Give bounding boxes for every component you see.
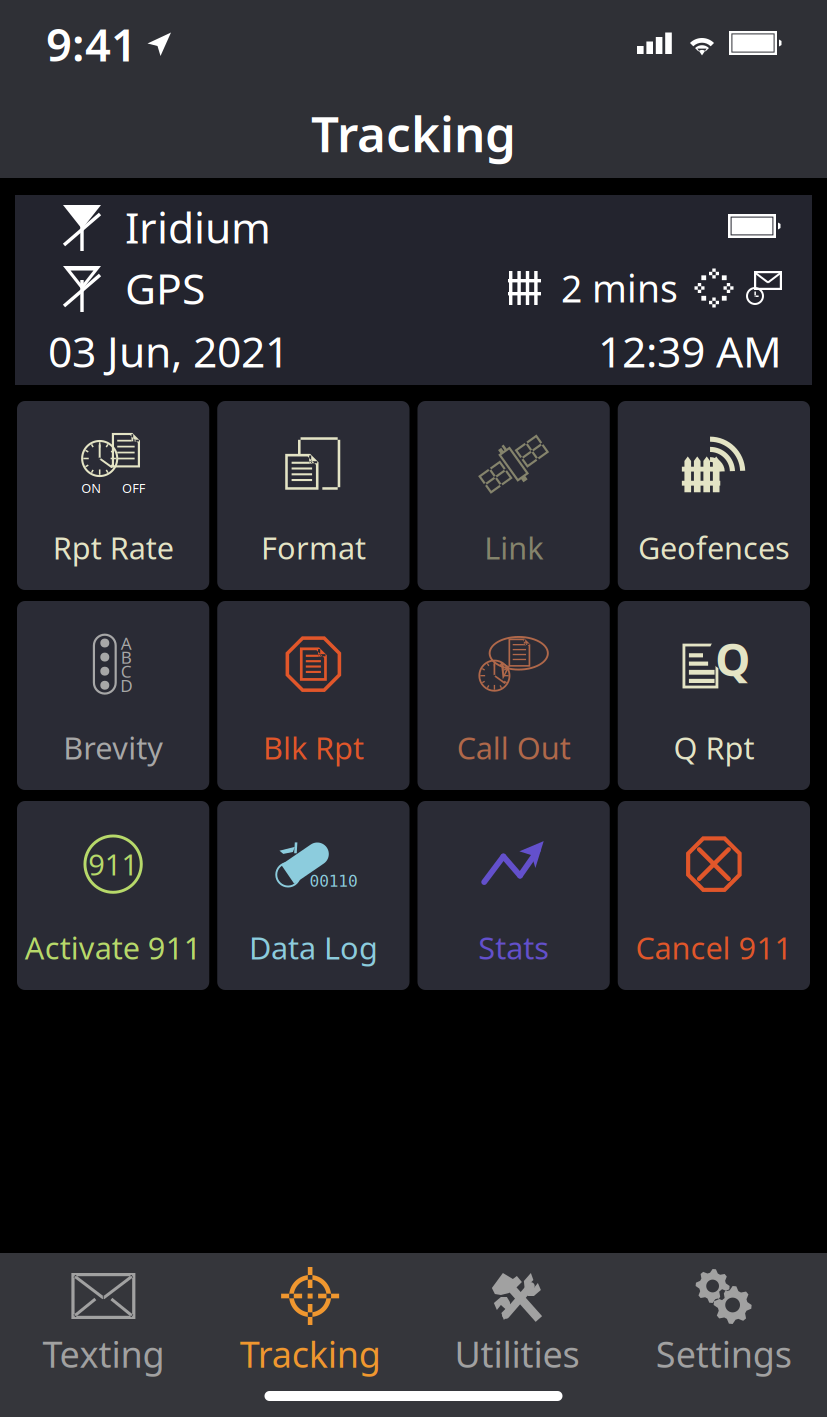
button[interactable]: Q: [618, 601, 810, 790]
staticText: Stats: [478, 927, 549, 968]
button[interactable]: Cancel 911: [618, 801, 810, 990]
staticText: Brevity: [63, 727, 163, 768]
staticText: B: [125, 635, 142, 671]
staticText: 2 mins: [561, 263, 678, 313]
button[interactable]: Geofences: [618, 401, 810, 590]
staticText: Activate 911: [25, 927, 202, 968]
staticText: 12:39 AM: [598, 323, 782, 379]
staticText: OFF: [127, 488, 163, 515]
button[interactable]: Call Out: [417, 601, 610, 790]
staticText: ON: [63, 488, 94, 515]
staticText: Data Log: [249, 927, 378, 968]
staticText: Tracking: [240, 1330, 381, 1378]
staticText: 03 Jun, 2021: [48, 323, 289, 379]
button[interactable]: Blk Rpt: [217, 601, 409, 790]
staticText: Format: [261, 527, 366, 568]
button[interactable]: Link: [417, 401, 610, 590]
staticText: A: [125, 613, 142, 649]
button[interactable]: Utilities: [413, 1267, 620, 1378]
button[interactable]: Tracking: [207, 1267, 414, 1378]
staticText: Call Out: [457, 727, 571, 768]
button[interactable]: A: [17, 601, 209, 790]
staticText: Link: [484, 527, 543, 568]
button[interactable]: Stats: [417, 801, 610, 990]
staticText: Rpt Rate: [53, 527, 174, 568]
staticText: Texting: [42, 1330, 164, 1378]
staticText: Geofences: [638, 527, 790, 568]
staticText: Q Rpt: [673, 727, 754, 768]
staticText: Q: [716, 610, 771, 702]
button[interactable]: Format: [217, 401, 409, 590]
button[interactable]: ON: [17, 401, 209, 590]
staticText: Settings: [656, 1330, 792, 1378]
staticText: 911: [74, 834, 152, 894]
staticText: D: [124, 679, 143, 715]
staticText: 9:41: [46, 14, 137, 74]
button[interactable]: Texting: [0, 1267, 207, 1378]
button[interactable]: Settings: [620, 1267, 827, 1378]
staticText: Iridium: [125, 199, 271, 255]
button[interactable]: 911: [17, 801, 209, 990]
staticText: 00110: [307, 876, 382, 905]
staticText: GPS: [125, 260, 205, 316]
staticText: Utilities: [454, 1330, 579, 1378]
staticText: Tracking: [311, 100, 516, 166]
staticText: C: [125, 657, 142, 693]
staticText: Cancel 911: [635, 927, 792, 968]
button[interactable]: 00110: [217, 801, 409, 990]
staticText: Blk Rpt: [263, 727, 364, 768]
